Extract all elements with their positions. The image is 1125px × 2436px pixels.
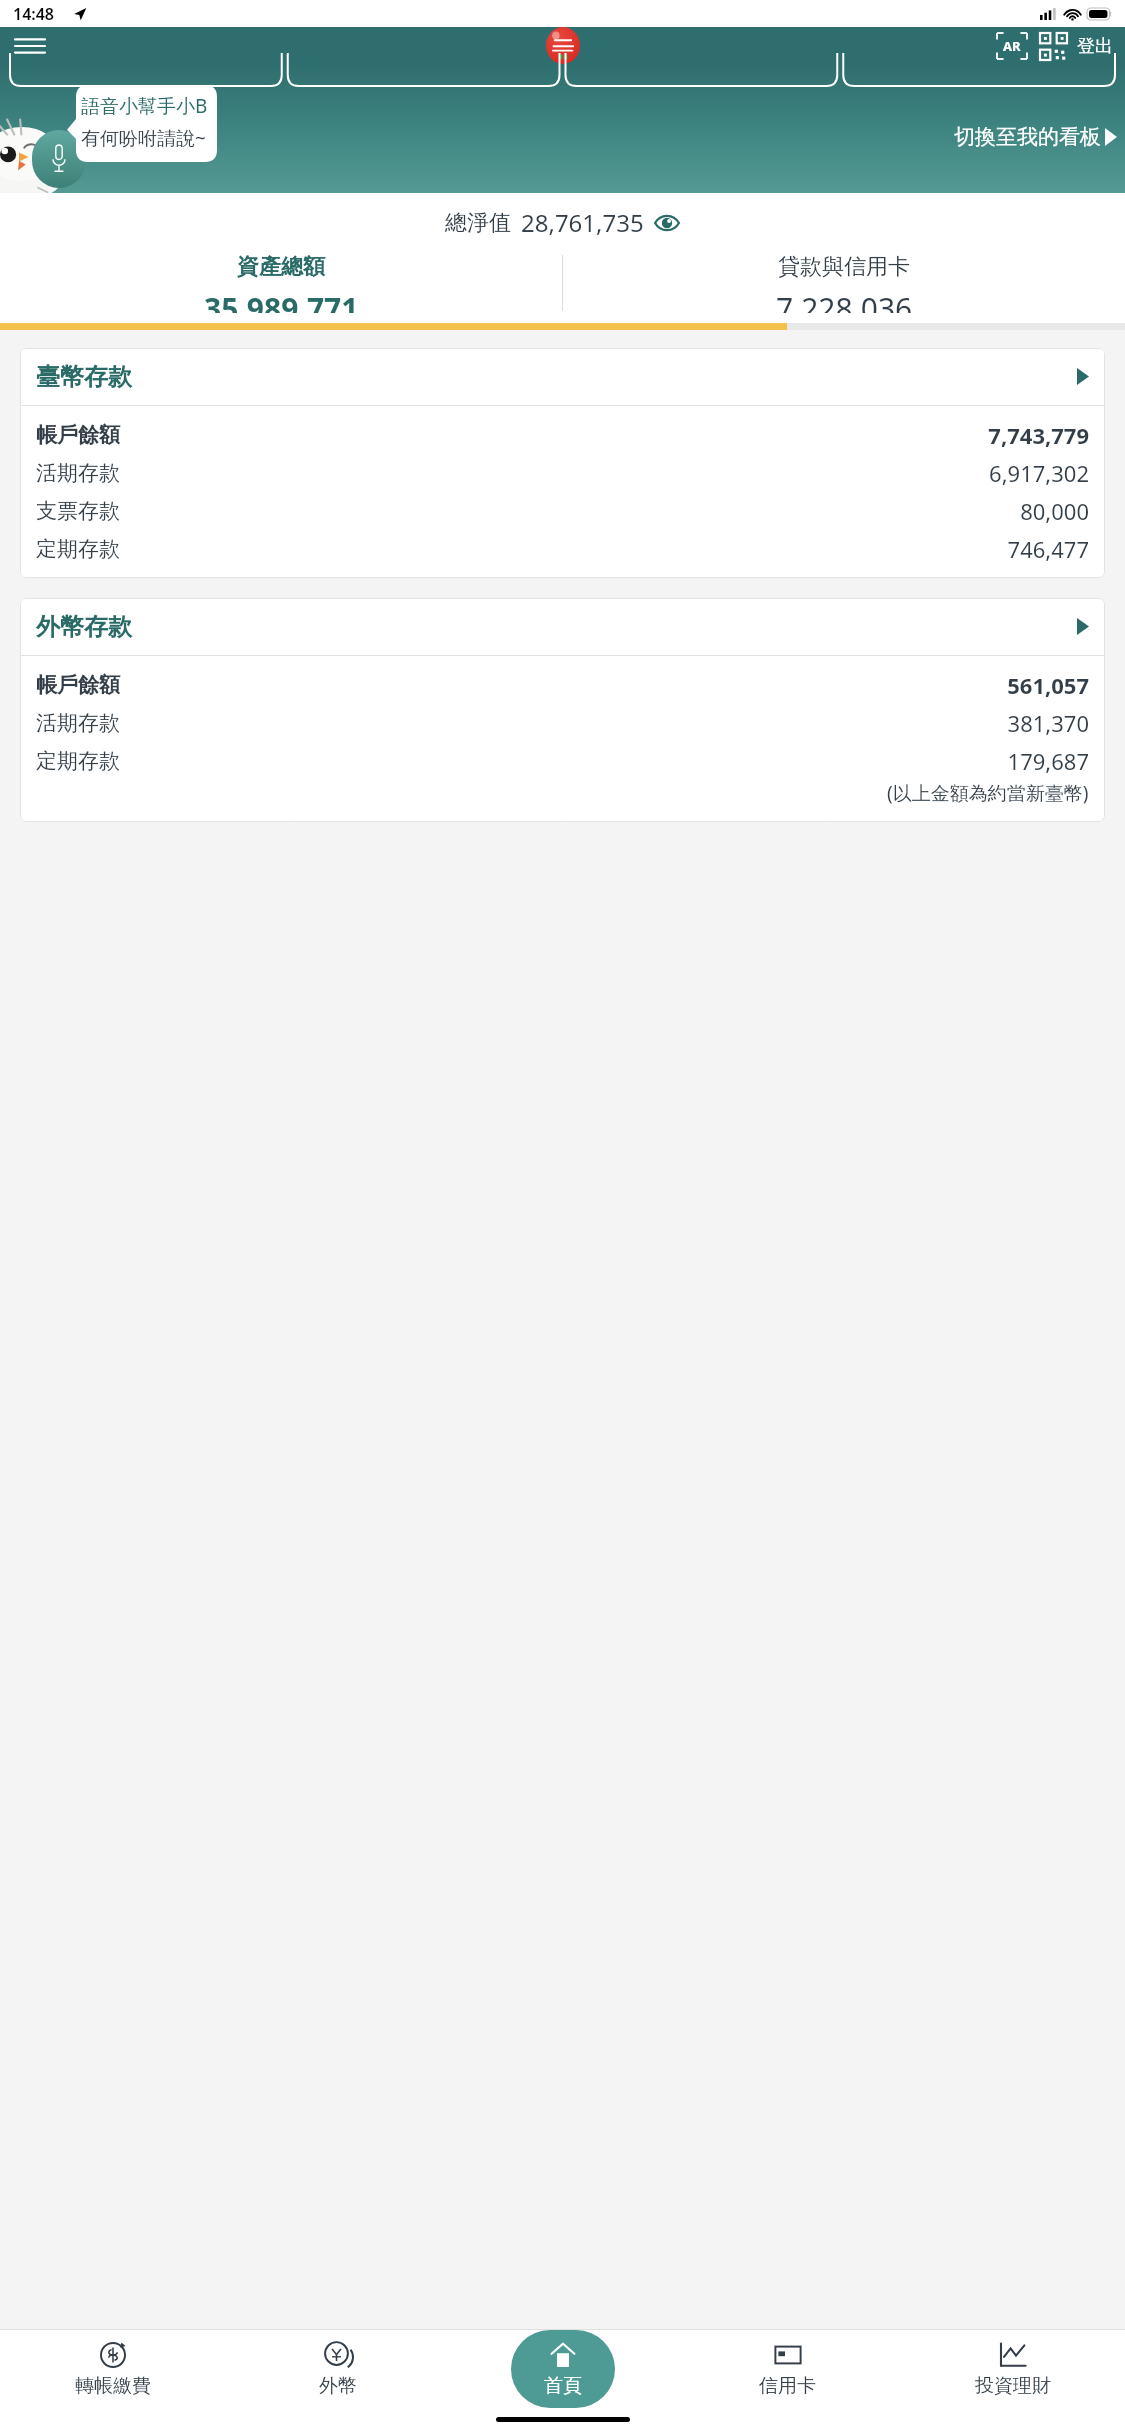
staticText: 80,000 — [1020, 496, 1089, 526]
button[interactable]: 定期存款 — [36, 742, 1089, 780]
button[interactable]: Menu — [12, 28, 48, 64]
button[interactable]: 貸款與信用卡 — [563, 253, 1125, 313]
staticText: 定期存款 — [36, 748, 120, 774]
staticText: 切換至我的看板 — [954, 124, 1101, 150]
staticText: 投資理財 — [975, 2374, 1051, 2398]
staticText: 活期存款 — [36, 460, 120, 486]
staticText: 28,761,735 — [521, 206, 644, 239]
button[interactable]: 支票存款 — [36, 492, 1089, 530]
button[interactable]: 信用卡 — [675, 2330, 900, 2408]
button[interactable]: 切換至我的看板 — [954, 124, 1117, 150]
staticText: 外幣 — [319, 2374, 357, 2398]
button[interactable]: 定期存款 — [36, 530, 1089, 568]
staticText: 179,687 — [1007, 746, 1089, 776]
staticText: 外幣存款 — [36, 612, 132, 642]
staticText: 帳戶餘額 — [36, 672, 120, 698]
button[interactable]: 外幣 — [225, 2330, 450, 2408]
button[interactable]: QR code scanner — [1037, 30, 1069, 62]
staticText: 信用卡 — [759, 2374, 816, 2398]
button[interactable]: 總淨值 — [0, 206, 1125, 239]
staticText: 7,743,779 — [988, 420, 1089, 450]
button[interactable]: 帳戶餘額 — [36, 416, 1089, 454]
button[interactable]: 活期存款 — [36, 454, 1089, 492]
staticText: 14:48 — [13, 3, 55, 25]
button[interactable]: 首頁 — [450, 2330, 675, 2408]
button[interactable]: 轉帳繳費 — [0, 2330, 225, 2408]
button[interactable]: 外幣存款 — [20, 598, 1105, 655]
staticText: 資產總額 — [237, 253, 325, 281]
staticText: 帳戶餘額 — [36, 422, 120, 448]
button[interactable]: 帳戶餘額 — [36, 666, 1089, 704]
button[interactable]: 資產總額 — [0, 253, 562, 313]
button[interactable]: 投資理財 — [900, 2330, 1125, 2408]
button[interactable]: Voice assistant microphone — [32, 130, 86, 188]
button[interactable]: We are family logo — [544, 27, 582, 64]
staticText: 561,057 — [1007, 670, 1089, 700]
staticText: 語音小幫手小B — [81, 93, 208, 119]
staticText: 轉帳繳費 — [75, 2374, 151, 2398]
staticText: 首頁 — [544, 2374, 582, 2398]
button[interactable]: 活期存款 — [36, 704, 1089, 742]
button[interactable]: AR — [995, 30, 1029, 62]
button[interactable]: 臺幣存款 — [20, 348, 1105, 405]
staticText: 登出 — [1077, 35, 1113, 58]
staticText: 6,917,302 — [989, 458, 1089, 488]
staticText: 7,228,036 — [776, 288, 913, 313]
staticText: 活期存款 — [36, 710, 120, 736]
staticText: 有何吩咐請說~ — [81, 125, 206, 151]
staticText: (以上金額為約當新臺幣) — [887, 780, 1089, 806]
staticText: 746,477 — [1007, 534, 1089, 564]
staticText: 35,989,771 — [204, 288, 359, 313]
staticText: 總淨值 — [445, 209, 511, 237]
staticText: 貸款與信用卡 — [778, 253, 910, 281]
staticText: 支票存款 — [36, 498, 120, 524]
staticText: 定期存款 — [36, 536, 120, 562]
staticText: AR — [1003, 37, 1021, 55]
button[interactable]: 登出 — [1075, 31, 1115, 62]
staticText: 臺幣存款 — [36, 362, 132, 392]
staticText: 381,370 — [1007, 708, 1089, 738]
